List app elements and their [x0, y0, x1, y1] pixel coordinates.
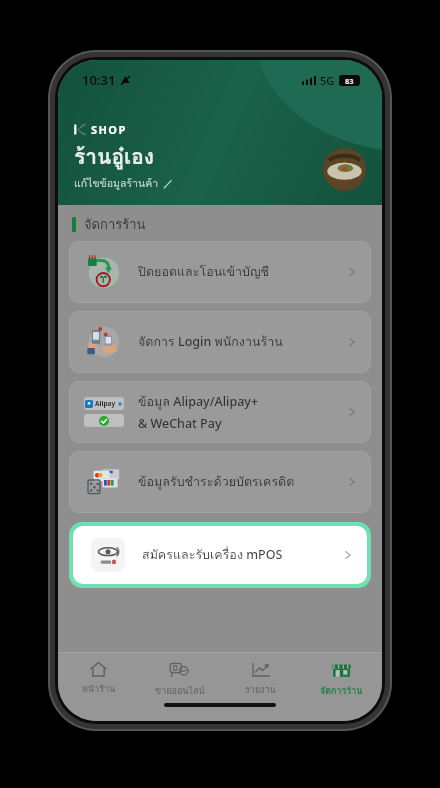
button[interactable]: จัดการ Login พนักงานร้าน [69, 311, 371, 373]
staticText: ขายออนไลน์ [155, 684, 205, 698]
staticText: จัดการร้าน [320, 684, 363, 698]
button[interactable]: Shop photo [323, 148, 366, 191]
other: Edit [163, 179, 173, 189]
staticText: 83 [345, 76, 354, 86]
button[interactable]: จัดการร้าน [301, 658, 382, 703]
staticText: รายงาน [245, 683, 276, 697]
staticText: Alipay [95, 399, 116, 408]
staticText: จัดการร้าน [84, 214, 146, 235]
staticText: แก้ไขข้อมูลร้านค้า [74, 175, 159, 192]
button[interactable]: สมัครและรับเครื่อง mPOS [73, 526, 367, 584]
staticText: SHOP [91, 122, 127, 137]
button[interactable]: ปิดยอดและโอนเข้าบัญชี [69, 241, 371, 303]
staticText: หน้าร้าน [82, 682, 116, 696]
staticText: ร้านอู๋เอง [74, 140, 155, 173]
staticText: ข้อมูล Alipay/Alipay+ [138, 392, 259, 412]
staticText: จัดการ Login พนักงานร้าน [138, 332, 283, 352]
staticText: ข้อมูลรับชำระด้วยบัตรเครดิต [138, 472, 295, 492]
staticText: สมัครและรับเครื่อง mPOS [142, 545, 283, 565]
staticText: 10:31 [82, 71, 116, 89]
staticText: 5G [320, 73, 335, 88]
button[interactable]: ขายออนไลน์ [139, 658, 220, 703]
staticText: ปิดยอดและโอนเข้าบัญชี [138, 262, 270, 282]
button[interactable]: Alipay [69, 381, 371, 443]
button[interactable]: หน้าร้าน [58, 658, 139, 703]
button[interactable]: รายงาน [220, 658, 301, 703]
button[interactable]: แก้ไขข้อมูลร้านค้า [74, 175, 173, 192]
staticText: & WeChat Pay [138, 415, 222, 432]
button[interactable]: ข้อมูลรับชำระด้วยบัตรเครดิต [69, 451, 371, 513]
